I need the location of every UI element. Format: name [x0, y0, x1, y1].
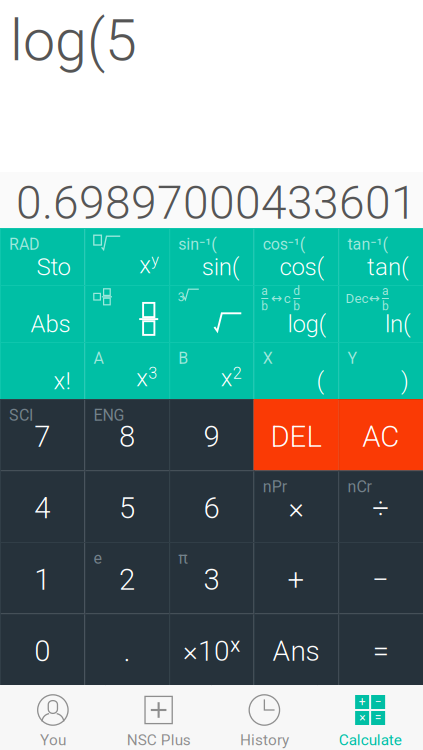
staticText: 2: [119, 563, 135, 597]
staticText: x: [221, 364, 233, 392]
staticText: b: [382, 299, 389, 313]
staticText: 9: [203, 420, 219, 454]
button[interactable]: x: [85, 228, 169, 285]
staticText: b: [261, 299, 268, 313]
button[interactable]: X: [254, 342, 338, 399]
button[interactable]: You: [0, 685, 106, 750]
staticText: sin⁻¹(: [178, 235, 216, 254]
button[interactable]: 0: [0, 613, 85, 685]
staticText: x!: [54, 367, 71, 395]
staticText: ×: [289, 491, 304, 525]
staticText: 3: [148, 363, 157, 383]
staticText: nPr: [263, 477, 287, 496]
button[interactable]: =: [338, 613, 423, 685]
button[interactable]: nPr: [254, 470, 338, 542]
staticText: log(: [287, 310, 326, 338]
button[interactable]: AC: [338, 399, 423, 470]
button[interactable]: ENG: [85, 399, 169, 470]
button[interactable]: cos⁻¹(: [254, 228, 338, 285]
button[interactable]: sin⁻¹(: [169, 228, 254, 285]
staticText: c: [284, 291, 291, 306]
button[interactable]: Ans: [254, 613, 338, 685]
staticText: 7: [34, 420, 50, 454]
button[interactable]: a: [254, 285, 338, 342]
button[interactable]: 6: [169, 470, 254, 542]
staticText: 3: [203, 563, 219, 597]
staticText: ENG: [94, 406, 125, 425]
staticText: ×: [359, 711, 365, 725]
staticText: NSC Plus: [127, 731, 191, 749]
button[interactable]: 5: [85, 470, 169, 542]
staticText: AC: [362, 420, 399, 454]
button[interactable]: Dec↔: [338, 285, 423, 342]
staticText: π: [178, 549, 188, 568]
staticText: ln(: [385, 310, 411, 338]
button[interactable]: ×10ˣ: [169, 613, 254, 685]
staticText: a: [261, 284, 268, 298]
button[interactable]: tan⁻¹(: [338, 228, 423, 285]
staticText: b: [293, 299, 300, 313]
staticText: You: [40, 731, 66, 749]
button[interactable]: [0, 285, 85, 342]
staticText: X: [263, 349, 273, 368]
button[interactable]: +: [254, 542, 338, 613]
staticText: ↔: [271, 291, 282, 306]
staticText: =: [373, 634, 389, 668]
staticText: a: [382, 284, 389, 298]
button[interactable]: nCr: [338, 470, 423, 542]
button[interactable]: B: [169, 342, 254, 399]
staticText: ×10ˣ: [183, 635, 240, 668]
button[interactable]: 4: [0, 470, 85, 542]
button[interactable]: RAD: [0, 228, 85, 285]
button[interactable]: History: [211, 685, 317, 750]
staticText: e: [94, 549, 102, 568]
staticText: .: [123, 634, 130, 668]
button[interactable]: [85, 285, 169, 342]
button[interactable]: 1: [0, 542, 85, 613]
staticText: 4: [34, 491, 50, 525]
staticText: Abs: [31, 310, 71, 338]
staticText: nCr: [347, 477, 371, 496]
button[interactable]: +: [317, 685, 423, 750]
staticText: Y: [347, 349, 357, 368]
staticText: −: [372, 563, 389, 597]
staticText: SCI: [9, 406, 33, 425]
button[interactable]: DEL: [254, 399, 338, 470]
button[interactable]: 3: [169, 285, 254, 342]
button[interactable]: NSC Plus: [106, 685, 212, 750]
staticText: History: [240, 731, 289, 749]
button[interactable]: [0, 342, 85, 399]
staticText: 1: [34, 563, 50, 597]
staticText: x: [139, 251, 151, 279]
staticText: cos⁻¹(: [263, 235, 305, 254]
staticText: RAD: [9, 235, 40, 254]
staticText: Calculate: [339, 731, 402, 749]
staticText: log(5: [10, 7, 137, 74]
staticText: DEL: [271, 420, 322, 454]
staticText: d: [293, 284, 300, 298]
staticText: 6: [203, 491, 219, 525]
staticText: 2: [233, 363, 242, 383]
staticText: A: [94, 349, 104, 368]
staticText: ÷: [372, 491, 389, 525]
button[interactable]: e: [85, 542, 169, 613]
staticText: x: [136, 364, 148, 392]
staticText: ): [401, 367, 409, 395]
button[interactable]: π: [169, 542, 254, 613]
button[interactable]: .: [85, 613, 169, 685]
staticText: (: [316, 367, 324, 395]
staticText: sin(: [202, 253, 240, 281]
staticText: +: [288, 563, 305, 597]
staticText: tan(: [367, 253, 409, 281]
staticText: tan⁻¹(: [347, 235, 387, 254]
staticText: =: [375, 711, 382, 725]
staticText: y: [151, 250, 159, 270]
staticText: cos(: [279, 253, 324, 281]
button[interactable]: 9: [169, 399, 254, 470]
staticText: −: [375, 695, 382, 709]
button[interactable]: A: [85, 342, 169, 399]
button[interactable]: SCI: [0, 399, 85, 470]
staticText: B: [178, 349, 188, 368]
button[interactable]: −: [338, 542, 423, 613]
button[interactable]: Y: [338, 342, 423, 399]
